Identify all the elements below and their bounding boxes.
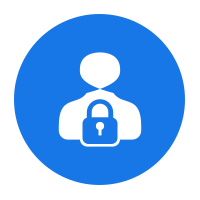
button[interactable]: Secure account <box>0 0 200 200</box>
